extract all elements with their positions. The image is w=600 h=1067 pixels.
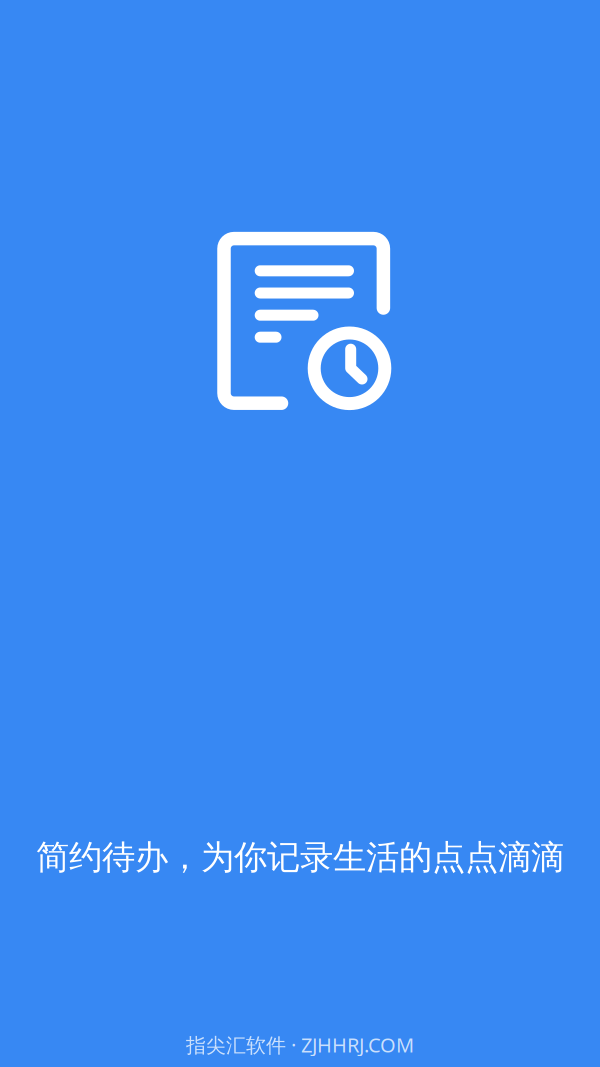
staticText: 指尖汇软件 · ZJHHRJ.COM — [186, 1031, 414, 1058]
staticText: 简约待办，为你记录生活的点点滴滴 — [36, 837, 564, 878]
